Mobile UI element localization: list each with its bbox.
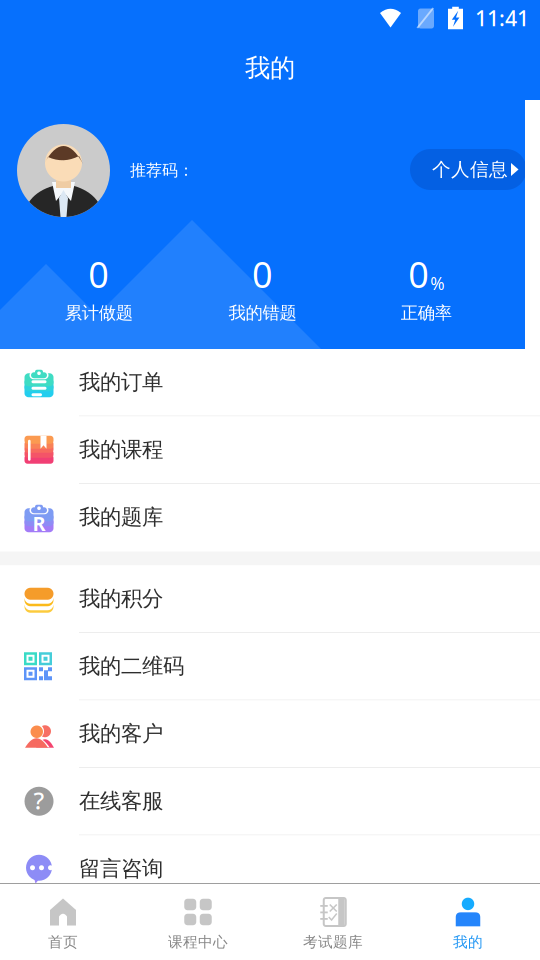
button[interactable]: 我的订单 bbox=[0, 349, 540, 416]
staticText: 我的积分 bbox=[79, 586, 163, 612]
button[interactable]: 首页 bbox=[0, 884, 130, 960]
staticText: 我的课程 bbox=[79, 437, 163, 463]
button[interactable]: 我的积分 bbox=[0, 565, 540, 633]
staticText: 正确率 bbox=[401, 302, 452, 324]
button[interactable]: 我的 bbox=[400, 884, 535, 960]
staticText: 累计做题 bbox=[65, 302, 133, 324]
staticText: 课程中心 bbox=[168, 933, 228, 951]
staticText: R bbox=[32, 510, 45, 537]
staticText: % bbox=[430, 272, 444, 295]
staticText: 11:41 bbox=[475, 4, 529, 32]
staticText: 0 bbox=[408, 250, 429, 298]
staticText: 我的订单 bbox=[79, 369, 163, 395]
button[interactable]: 课程中心 bbox=[130, 884, 265, 960]
staticText: 个人信息 bbox=[432, 158, 508, 181]
staticText: 考试题库 bbox=[303, 933, 363, 951]
staticText: 留言咨询 bbox=[79, 856, 163, 882]
button[interactable]: 留言咨询 bbox=[0, 835, 540, 903]
button[interactable]: 我的二维码 bbox=[0, 633, 540, 700]
staticText: 我的题库 bbox=[79, 504, 163, 530]
staticText: 0 bbox=[88, 250, 109, 298]
staticText: ? bbox=[33, 784, 44, 816]
button[interactable]: ? bbox=[0, 768, 540, 835]
button[interactable]: 我的客户 bbox=[0, 700, 540, 768]
staticText: 推荐码： bbox=[130, 161, 194, 180]
staticText: 0 bbox=[252, 250, 273, 298]
staticText: 在线客服 bbox=[79, 788, 163, 814]
button[interactable]: 考试题库 bbox=[265, 884, 400, 960]
button[interactable]: R bbox=[0, 484, 540, 551]
staticText: 我的二维码 bbox=[79, 653, 184, 679]
staticText: 首页 bbox=[48, 933, 78, 951]
button[interactable]: 我的课程 bbox=[0, 416, 540, 484]
button[interactable]: 个人信息 bbox=[410, 149, 526, 190]
staticText: 我的错题 bbox=[228, 302, 296, 324]
staticText: 我的客户 bbox=[79, 721, 163, 747]
staticText: 我的 bbox=[245, 52, 295, 83]
staticText: 我的 bbox=[453, 933, 483, 951]
